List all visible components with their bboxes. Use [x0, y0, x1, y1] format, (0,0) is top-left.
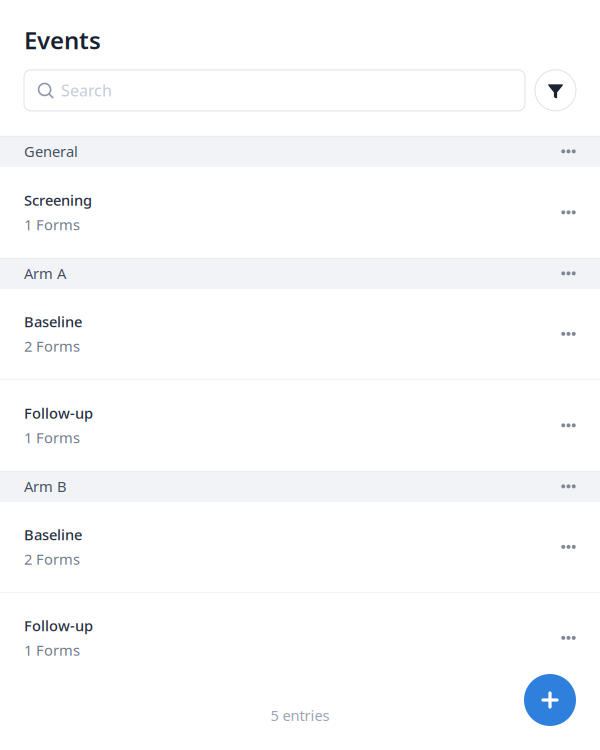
staticText: General	[24, 142, 78, 161]
button[interactable]: Arm B section options	[546, 472, 590, 501]
staticText: 1 Forms	[24, 215, 80, 234]
button[interactable]: Arm A section options	[546, 259, 590, 288]
staticText: 2 Forms	[24, 336, 80, 356]
staticText: Follow-up	[24, 616, 93, 635]
button[interactable]: Follow-up	[0, 593, 600, 683]
button[interactable]: Follow-up	[0, 380, 600, 471]
staticText: Search	[61, 80, 112, 101]
button[interactable]: Add event	[524, 674, 576, 726]
staticText: 2 Forms	[24, 549, 80, 569]
button[interactable]: Baseline	[0, 502, 600, 592]
staticText: Baseline	[24, 312, 82, 331]
staticText: Follow-up	[24, 403, 93, 423]
staticText: Baseline	[24, 525, 82, 544]
button[interactable]: Filter	[535, 70, 576, 111]
staticText: Screening	[24, 190, 92, 210]
button[interactable]: Screening	[0, 167, 600, 258]
staticText: 1 Forms	[24, 428, 80, 447]
staticText: Arm A	[24, 264, 66, 283]
staticText: Arm B	[24, 477, 67, 496]
button[interactable]: Baseline	[0, 289, 600, 379]
staticText: 5 entries	[270, 705, 329, 725]
staticText: Events	[24, 24, 101, 56]
staticText: 1 Forms	[24, 640, 80, 660]
button[interactable]: General section options	[546, 137, 590, 166]
